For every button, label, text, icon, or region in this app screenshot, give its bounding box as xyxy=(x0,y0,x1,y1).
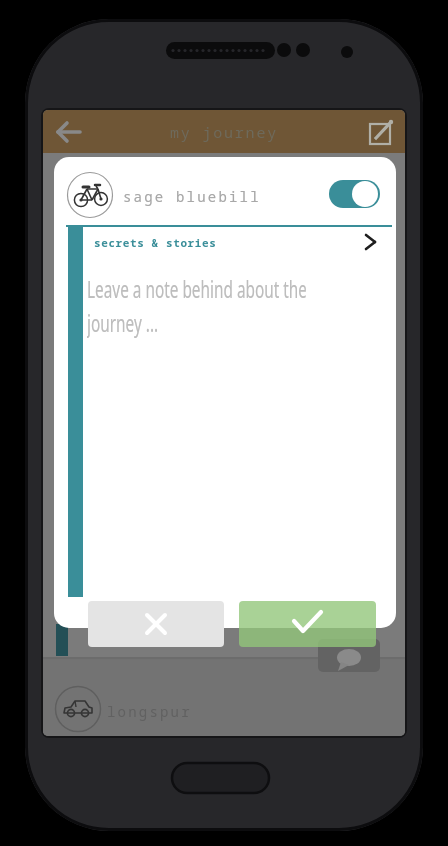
staticText: secrets & stories xyxy=(94,235,217,250)
staticText: Leave a note behind about the journey ..… xyxy=(87,272,306,339)
button[interactable] xyxy=(365,116,397,148)
button[interactable] xyxy=(239,601,376,647)
staticText: my journey xyxy=(170,122,279,142)
button[interactable] xyxy=(329,180,380,208)
button[interactable] xyxy=(84,227,392,257)
button[interactable] xyxy=(51,115,85,149)
button[interactable] xyxy=(88,601,224,647)
staticText: longspur xyxy=(107,702,192,721)
staticText: sage bluebill xyxy=(123,187,261,206)
